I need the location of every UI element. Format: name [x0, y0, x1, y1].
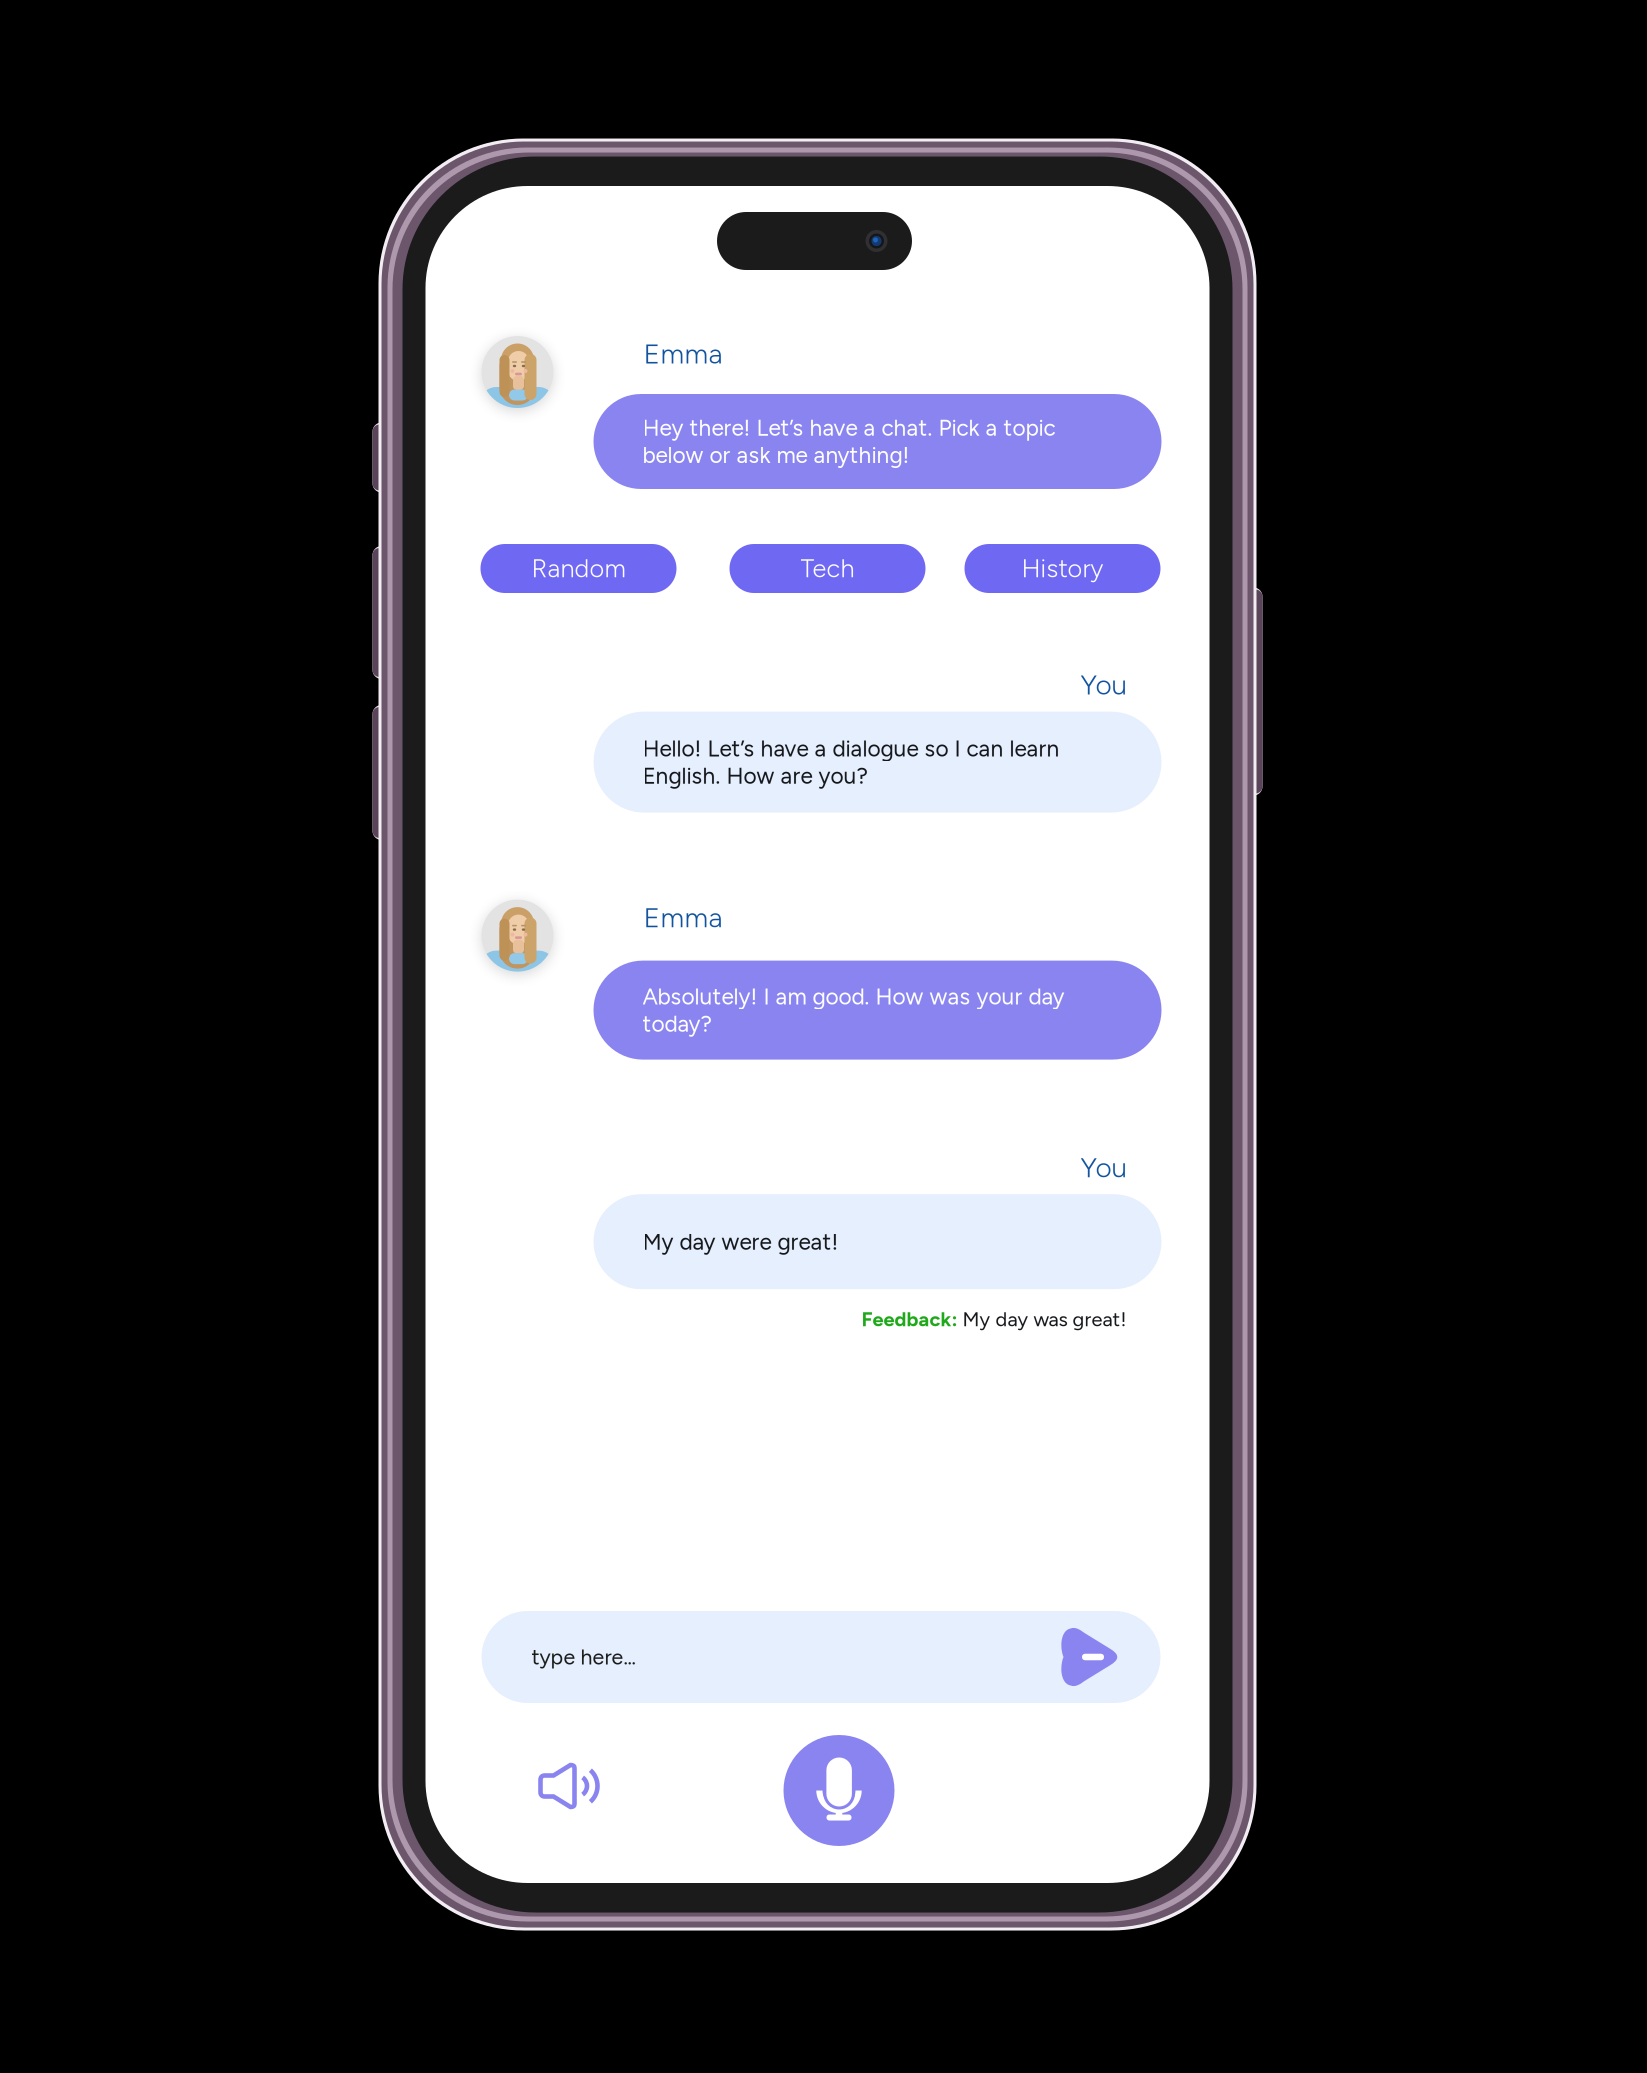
staticText: My day was great!: [957, 1307, 1126, 1331]
staticText: Emma: [643, 901, 722, 934]
button[interactable]: Record voice: [783, 1735, 894, 1846]
button[interactable]: Tech: [729, 544, 925, 593]
button[interactable]: Random: [480, 544, 676, 593]
staticText: Random: [531, 553, 625, 584]
staticText: You: [1080, 668, 1127, 702]
button[interactable]: History: [964, 544, 1160, 593]
staticText: History: [1021, 553, 1103, 584]
staticText: Hello! Let’s have a dialogue so I can le…: [642, 735, 1059, 789]
button[interactable]: Play audio: [537, 1762, 601, 1810]
staticText: Feedback:: [861, 1307, 957, 1331]
staticText: Tech: [800, 553, 854, 584]
staticText: Absolutely! I am good. How was your day …: [642, 983, 1064, 1037]
staticText: Hey there! Let’s have a chat. Pick a top…: [642, 414, 1055, 469]
staticText: My day were great!: [642, 1228, 838, 1255]
staticText: type here...: [531, 1644, 635, 1670]
staticText: Emma: [643, 337, 722, 371]
button[interactable]: Send: [1059, 1626, 1120, 1687]
staticText: You: [1080, 1151, 1127, 1184]
